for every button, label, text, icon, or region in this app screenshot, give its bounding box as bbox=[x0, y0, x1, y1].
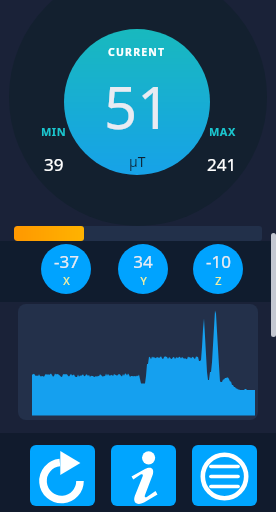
button[interactable]: Info bbox=[111, 445, 176, 506]
button[interactable]: 34 bbox=[118, 244, 168, 294]
button[interactable]: -10 bbox=[193, 244, 243, 294]
button[interactable]: Menu bbox=[192, 445, 257, 506]
button[interactable]: Refresh bbox=[30, 445, 95, 506]
staticText: MAX bbox=[209, 124, 236, 139]
staticText: -37 bbox=[54, 250, 79, 273]
staticText: Z bbox=[215, 273, 222, 288]
staticText: µT bbox=[129, 152, 146, 171]
staticText: X bbox=[63, 273, 70, 288]
staticText: Y bbox=[140, 273, 147, 288]
staticText: 51 bbox=[104, 67, 171, 146]
staticText: 34 bbox=[133, 250, 153, 273]
staticText: 241 bbox=[207, 153, 237, 176]
staticText: -10 bbox=[206, 250, 231, 273]
staticText: 39 bbox=[44, 153, 64, 176]
button[interactable]: -37 bbox=[41, 244, 91, 294]
button[interactable] bbox=[18, 304, 258, 420]
staticText: MIN bbox=[41, 124, 67, 139]
button[interactable]: CURRENT bbox=[64, 29, 210, 175]
staticText: CURRENT bbox=[108, 45, 166, 59]
